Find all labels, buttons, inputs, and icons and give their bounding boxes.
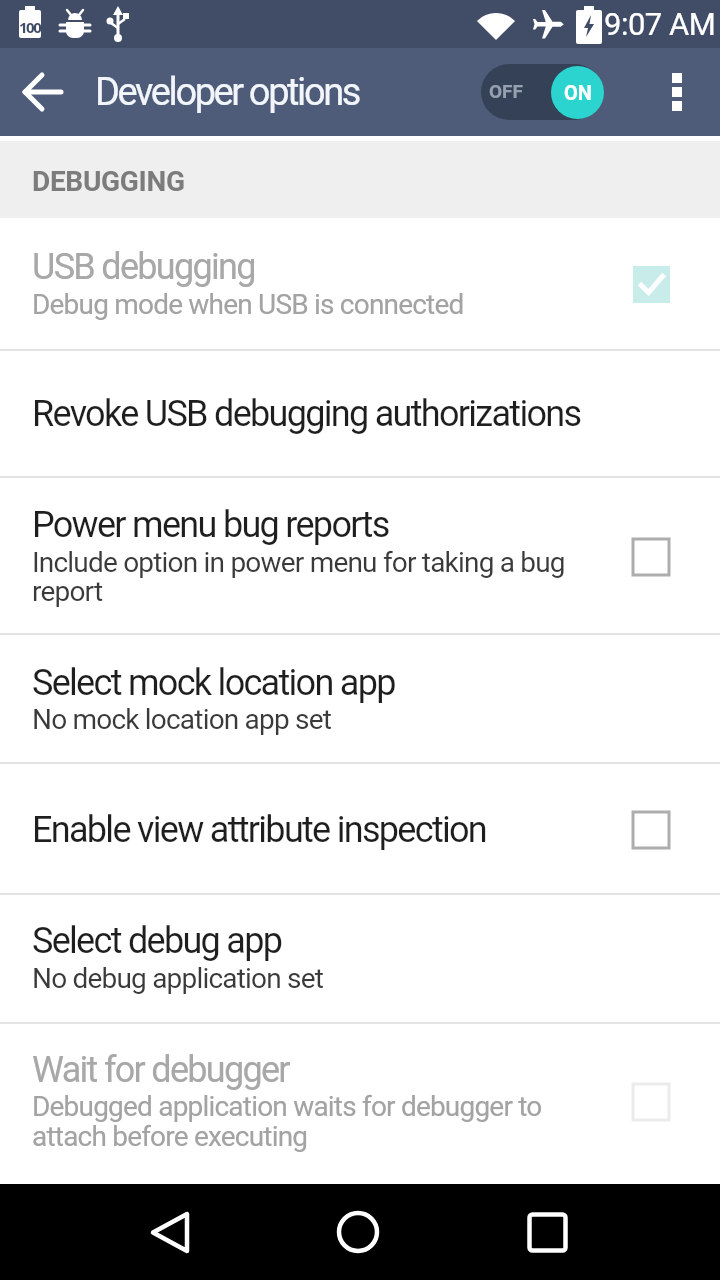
staticText: Debug mode when USB is connected <box>32 288 464 321</box>
staticText: Enable view attribute inspection <box>32 809 487 851</box>
staticText: Developer options <box>95 70 360 115</box>
staticText: Revoke USB debugging authorizations <box>32 393 581 435</box>
staticText: 9:07 AM <box>604 6 716 42</box>
staticText: Select mock location app <box>32 662 395 704</box>
staticText: OFF <box>489 80 523 102</box>
staticText: USB debugging <box>32 246 255 288</box>
staticText: No debug application set <box>32 962 324 995</box>
staticText: No mock location app set <box>32 703 332 736</box>
staticText: 100 <box>19 17 41 37</box>
staticText: Debugged application waits for debugger … <box>32 1090 542 1153</box>
staticText: ON <box>564 81 592 104</box>
staticText: DEBUGGING <box>32 165 185 198</box>
staticText: Include option in power menu for taking … <box>32 546 565 608</box>
staticText: Power menu bug reports <box>32 504 389 546</box>
staticText: Wait for debugger <box>32 1049 289 1091</box>
staticText: Select debug app <box>32 920 282 962</box>
